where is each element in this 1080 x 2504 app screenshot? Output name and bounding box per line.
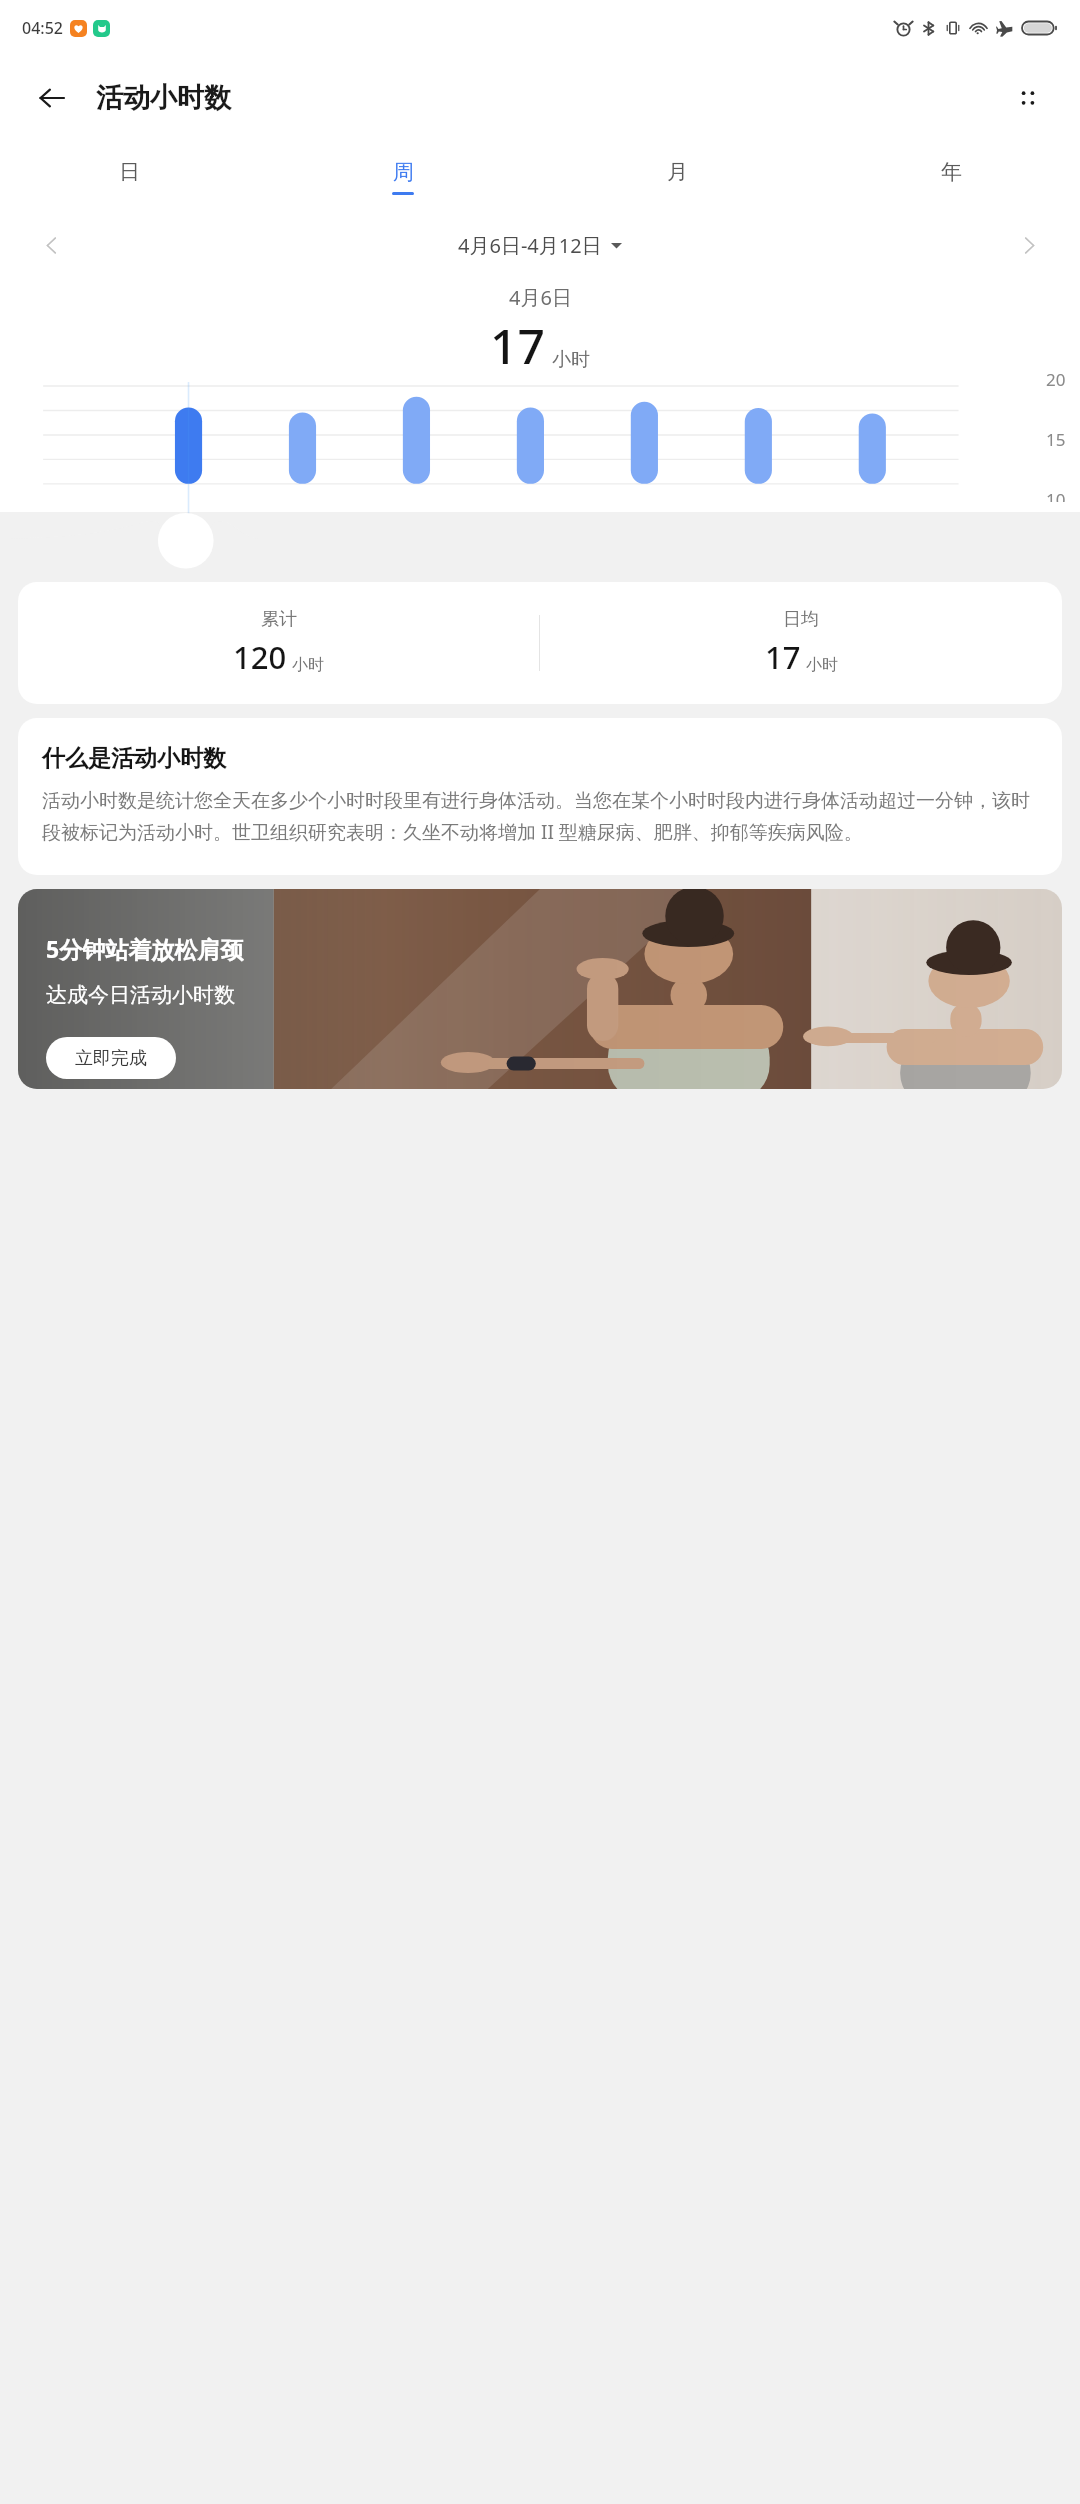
staticText: 月 [667,159,688,185]
staticText: 什么是活动小时数 [42,744,226,773]
button[interactable]: Back [26,72,78,124]
staticText: 15 [1046,428,1066,451]
staticText: 4月6日-4月12日 [458,232,602,259]
button[interactable]: 5分钟站着放松肩颈 [18,889,1062,1089]
button[interactable]: 年 [914,159,988,195]
button[interactable]: 立即完成 [46,1037,176,1079]
button[interactable]: Previous week [24,218,78,272]
staticText: 年 [941,159,962,185]
staticText: 17 [490,313,545,378]
button[interactable]: 日 [92,159,166,195]
staticText: 120 [233,636,287,678]
staticText: 04:52 [22,17,63,39]
staticText: 累计 [261,608,297,631]
button[interactable]: Next week [1002,218,1056,272]
staticText: 日 [119,159,140,185]
staticText: 日均 [783,608,819,631]
staticText: 20 [1046,368,1066,391]
staticText: 小时 [292,655,324,675]
staticText: 周 [393,159,414,185]
staticText: 立即完成 [75,1047,147,1070]
button[interactable]: 4月6日-4月12日 [458,232,622,259]
staticText: 小时 [806,655,838,675]
staticText: 活动小时数 [96,81,231,115]
button[interactable]: 周 [366,159,440,195]
staticText: 活动小时数是统计您全天在多少个小时时段里有进行身体活动。当您在某个小时时段内进行… [42,789,1038,845]
staticText: 小时 [552,348,590,372]
staticText: 5分钟站着放松肩颈 [46,933,244,964]
button[interactable]: 累计 [18,582,1062,704]
staticText: 17 [765,636,801,678]
staticText: 4月6日 [509,284,572,311]
button[interactable]: 月 [640,159,714,195]
button[interactable]: More options [1002,72,1054,124]
staticText: 达成今日活动小时数 [46,982,235,1008]
button[interactable]: 什么是活动小时数 [18,718,1062,875]
staticText: 10 [1046,488,1066,502]
